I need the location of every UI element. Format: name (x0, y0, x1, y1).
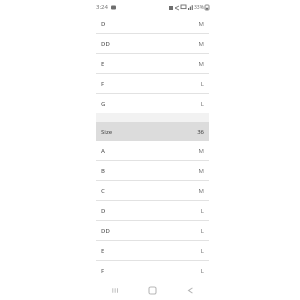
staticText: C (101, 187, 105, 195)
button[interactable]: Back (181, 281, 199, 299)
staticText: D (101, 20, 106, 28)
staticText: L (200, 100, 204, 108)
staticText: DD (101, 227, 110, 235)
staticText: DD (101, 40, 110, 48)
staticText: L (200, 80, 204, 88)
button[interactable]: Recent apps (106, 281, 124, 299)
button[interactable]: F (96, 74, 209, 93)
staticText: Size (101, 128, 113, 136)
staticText: M (198, 167, 204, 175)
button[interactable]: A (96, 141, 209, 160)
staticText: M (198, 60, 204, 68)
staticText: 33% (194, 4, 204, 11)
button[interactable]: C (96, 181, 209, 200)
staticText: B (101, 167, 105, 175)
staticText: E (101, 247, 105, 255)
button[interactable]: D (96, 201, 209, 220)
staticText: F (101, 267, 105, 275)
staticText: 36 (197, 128, 204, 136)
staticText: M (198, 20, 204, 28)
staticText: 3:24 (96, 3, 108, 11)
staticText: M (198, 147, 204, 155)
staticText: L (200, 227, 204, 235)
staticText: L (200, 247, 204, 255)
staticText: L (200, 207, 204, 215)
button[interactable]: F (96, 261, 209, 280)
button[interactable]: E (96, 241, 209, 260)
staticText: G (101, 100, 106, 108)
button[interactable]: DD (96, 34, 209, 53)
staticText: E (101, 60, 105, 68)
button[interactable]: DD (96, 221, 209, 240)
staticText: D (101, 207, 106, 215)
staticText: M (198, 187, 204, 195)
staticText: A (101, 147, 105, 155)
button[interactable]: G (96, 94, 209, 113)
staticText: M (198, 40, 204, 48)
button[interactable]: Home (143, 281, 161, 299)
button[interactable]: D (96, 14, 209, 33)
staticText: F (101, 80, 105, 88)
button[interactable]: B (96, 161, 209, 180)
button[interactable]: E (96, 54, 209, 73)
staticText: L (200, 267, 204, 275)
button[interactable]: Size (96, 122, 209, 141)
